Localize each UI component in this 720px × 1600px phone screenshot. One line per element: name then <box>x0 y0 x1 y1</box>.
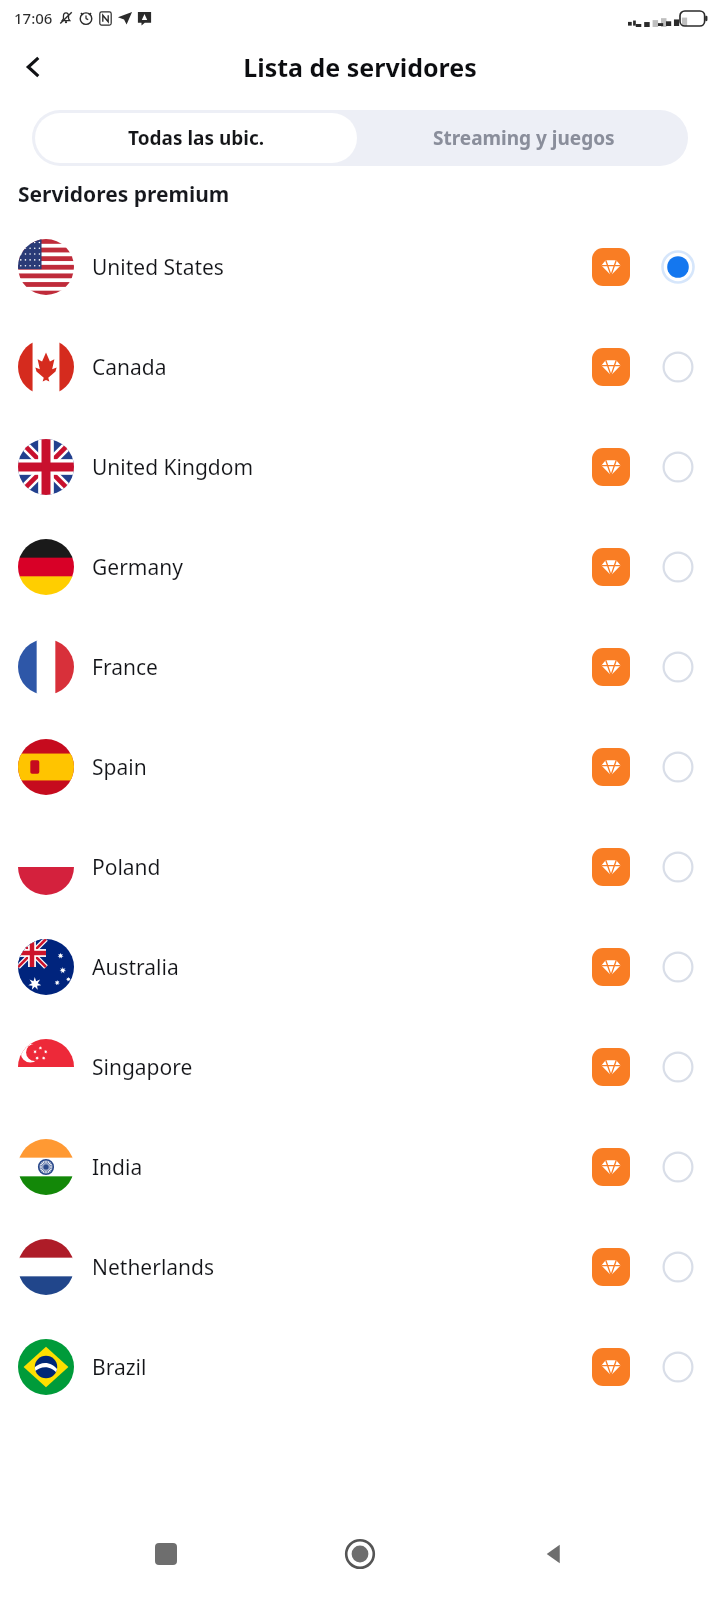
staticText: Australia <box>92 953 592 982</box>
staticText: Poland <box>92 853 592 882</box>
button[interactable]: Select Germany <box>656 545 700 589</box>
button[interactable]: Premium <box>592 448 630 486</box>
button[interactable]: Canada <box>0 317 720 417</box>
button[interactable]: Streaming y juegos <box>360 110 688 166</box>
button[interactable]: Premium <box>592 948 630 986</box>
button[interactable]: Premium <box>592 748 630 786</box>
button[interactable]: Select India <box>656 1145 700 1189</box>
button[interactable]: Brazil <box>0 1317 720 1417</box>
button[interactable]: Premium <box>592 1248 630 1286</box>
staticText: Netherlands <box>92 1253 592 1282</box>
button[interactable]: Back <box>526 1526 582 1582</box>
button[interactable]: Select Brazil <box>656 1345 700 1389</box>
button[interactable]: Premium <box>592 348 630 386</box>
staticText: Servidores premium <box>18 180 230 209</box>
staticText: France <box>92 653 592 682</box>
button[interactable]: France <box>0 617 720 717</box>
button[interactable]: India <box>0 1117 720 1217</box>
staticText: United Kingdom <box>92 453 592 482</box>
button[interactable]: United States <box>0 217 720 317</box>
button[interactable]: Select Netherlands <box>656 1245 700 1289</box>
staticText: Canada <box>92 353 592 382</box>
button[interactable]: Back <box>8 41 60 93</box>
staticText: 17:06 <box>14 8 53 28</box>
button[interactable]: Select Poland <box>656 845 700 889</box>
button[interactable]: Australia <box>0 917 720 1017</box>
button[interactable]: Spain <box>0 717 720 817</box>
button[interactable]: Premium <box>592 548 630 586</box>
staticText: India <box>92 1153 592 1182</box>
button[interactable]: Germany <box>0 517 720 617</box>
staticText: Lista de servidores <box>243 50 477 84</box>
button[interactable]: Netherlands <box>0 1217 720 1317</box>
button[interactable]: Premium <box>592 1348 630 1386</box>
button[interactable]: Premium <box>592 648 630 686</box>
staticText: Singapore <box>92 1053 592 1082</box>
button[interactable]: Select Australia <box>656 945 700 989</box>
button[interactable]: Poland <box>0 817 720 917</box>
button[interactable]: Select Singapore <box>656 1045 700 1089</box>
staticText: Germany <box>92 553 592 582</box>
staticText: United States <box>92 253 592 282</box>
staticText: Streaming y juegos <box>433 125 615 151</box>
button[interactable]: Premium <box>592 248 630 286</box>
button[interactable]: Todas las ubic. <box>35 113 357 163</box>
button[interactable]: Singapore <box>0 1017 720 1117</box>
staticText: Todas las ubic. <box>128 125 265 151</box>
button[interactable]: Premium <box>592 848 630 886</box>
button[interactable]: Select Spain <box>656 745 700 789</box>
button[interactable]: Home <box>332 1526 388 1582</box>
staticText: Brazil <box>92 1353 592 1382</box>
button[interactable]: Select France <box>656 645 700 689</box>
button[interactable]: United Kingdom <box>0 417 720 517</box>
button[interactable]: Premium <box>592 1148 630 1186</box>
button[interactable]: Select United States <box>656 245 700 289</box>
button[interactable]: Select United Kingdom <box>656 445 700 489</box>
button[interactable]: Select Canada <box>656 345 700 389</box>
button[interactable]: Premium <box>592 1048 630 1086</box>
staticText: Spain <box>92 753 592 782</box>
button[interactable]: Recent apps <box>138 1526 194 1582</box>
